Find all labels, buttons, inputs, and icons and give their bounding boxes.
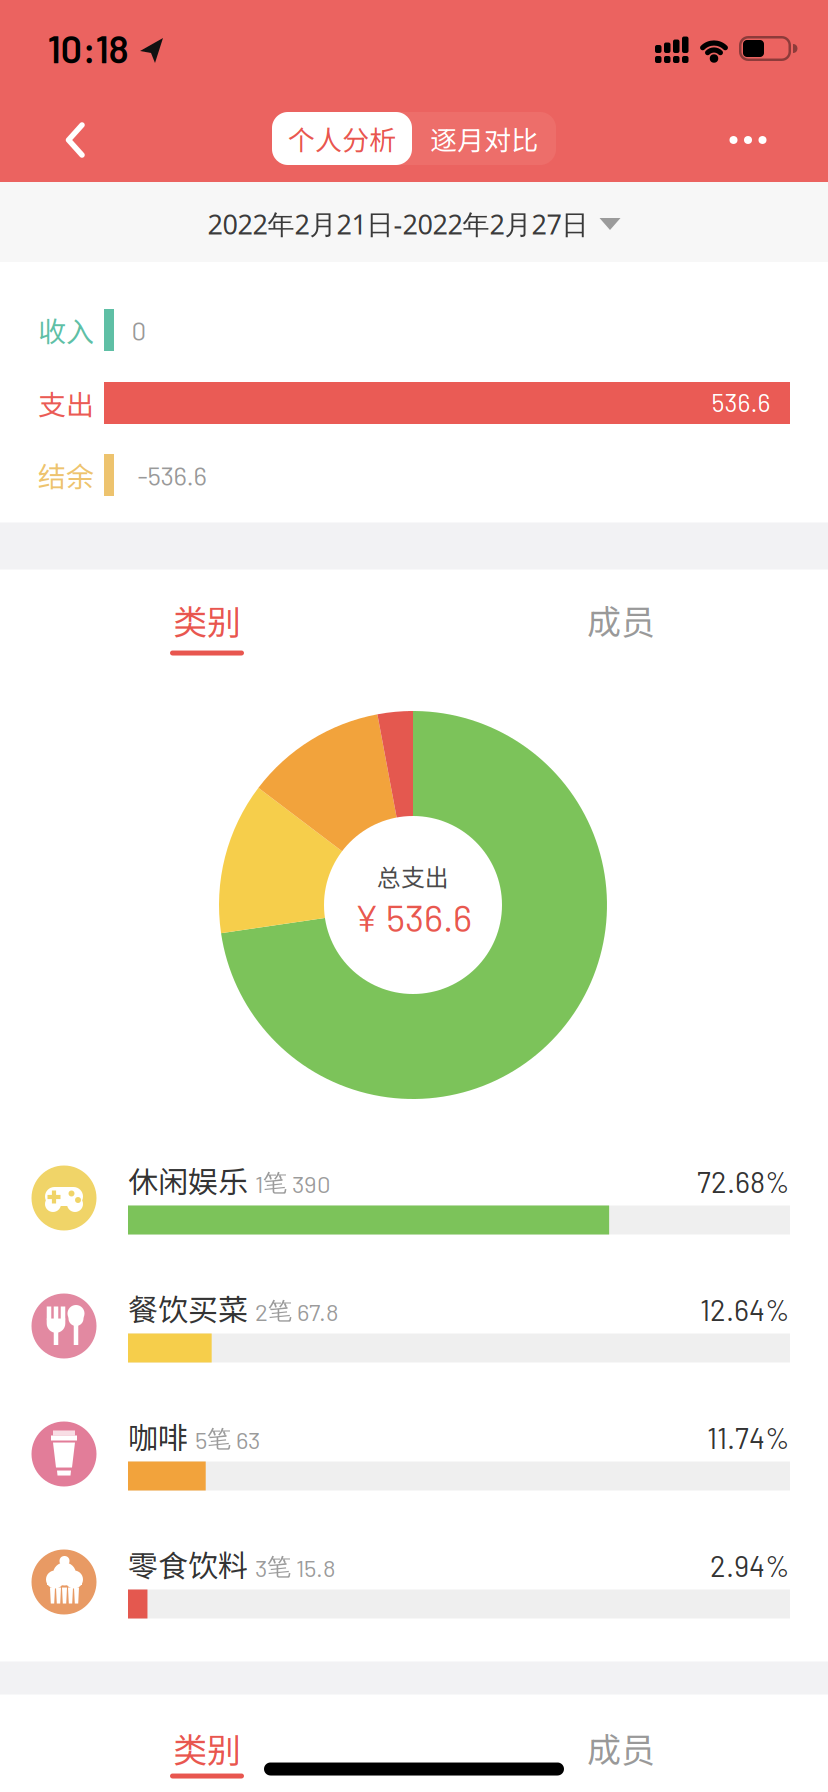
staticText: 成员 (587, 1723, 655, 1773)
staticText: 5笔 63 (195, 1424, 260, 1454)
button[interactable]: 逐月对比 (412, 112, 556, 165)
staticText: 成员 (587, 595, 655, 645)
staticText: 收入 (38, 310, 94, 350)
button[interactable]: 零食饮料 (24, 1522, 800, 1642)
button[interactable]: More (716, 118, 780, 162)
staticText: 0 (131, 314, 146, 346)
staticText: -536.6 (137, 459, 206, 491)
staticText: 休闲娱乐 (128, 1158, 248, 1202)
staticText: 72.68% (697, 1164, 790, 1199)
button[interactable]: 个人分析 (272, 112, 412, 165)
button[interactable]: 休闲娱乐 (24, 1138, 800, 1258)
staticText: 咖啡 (128, 1414, 188, 1458)
staticText: 11.74% (707, 1420, 790, 1455)
button[interactable]: 类别 (127, 1708, 287, 1788)
staticText: 1笔 390 (255, 1168, 331, 1198)
button[interactable]: 2022年2月21日-2022年2月27日 (207, 184, 620, 264)
button[interactable]: 成员 (541, 1708, 701, 1788)
staticText: 2.94% (710, 1548, 790, 1583)
staticText: 2022年2月21日-2022年2月27日 (207, 206, 588, 242)
staticText: 12.64% (700, 1292, 790, 1327)
staticText: 餐饮买菜 (128, 1286, 248, 1330)
staticText: 总支出 (377, 859, 449, 893)
staticText: 2笔 67.8 (255, 1296, 339, 1326)
staticText: 10:18 (47, 25, 128, 71)
staticText: 类别 (173, 595, 241, 645)
staticText: ¥ 536.6 (354, 895, 472, 939)
staticText: 个人分析 (288, 119, 396, 158)
staticText: 类别 (173, 1723, 241, 1773)
staticText: 支出 (38, 383, 94, 423)
button[interactable]: Back (47, 112, 103, 168)
staticText: 536.6 (711, 387, 770, 417)
staticText: 结余 (38, 455, 94, 495)
button[interactable]: 餐饮买菜 (24, 1266, 800, 1386)
button[interactable]: 类别 (127, 580, 287, 660)
staticText: 3笔 15.8 (255, 1552, 336, 1582)
staticText: 逐月对比 (430, 119, 538, 158)
button[interactable]: 咖啡 (24, 1394, 800, 1514)
staticText: 零食饮料 (128, 1542, 248, 1586)
button[interactable]: 成员 (541, 580, 701, 660)
